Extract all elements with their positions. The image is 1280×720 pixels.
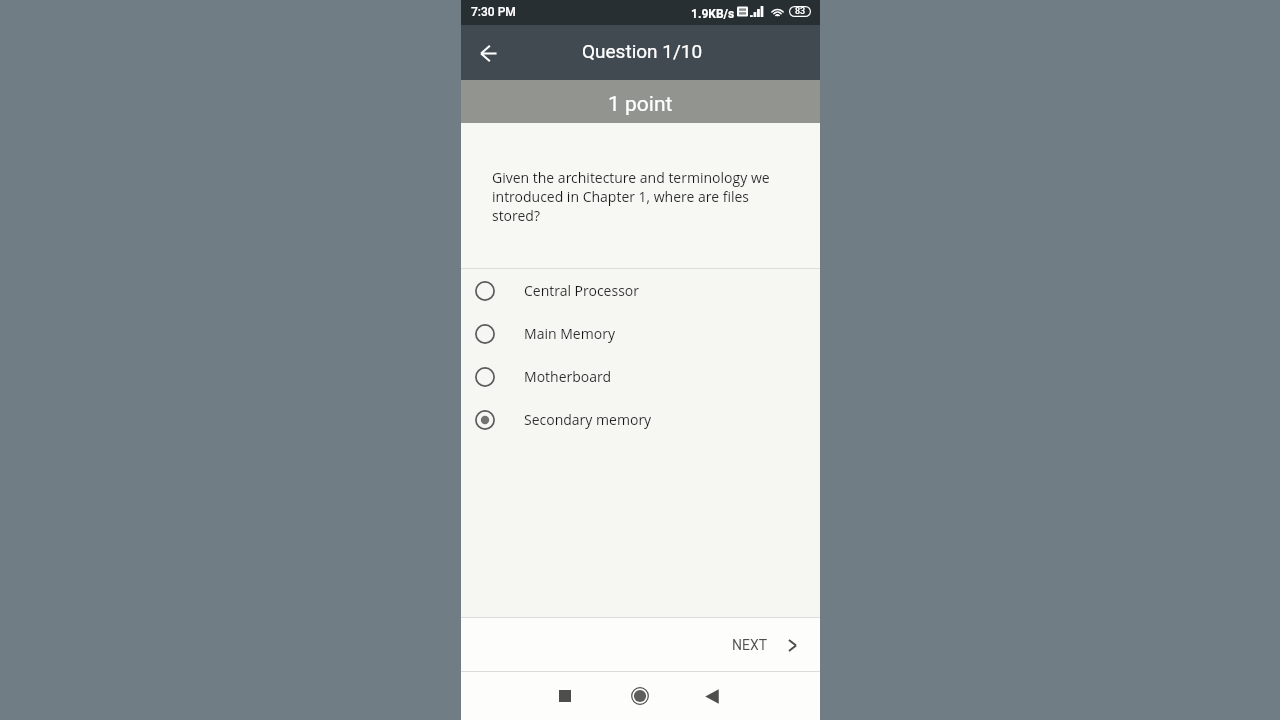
staticText: Secondary memory xyxy=(524,410,652,429)
staticText: Motherboard xyxy=(524,367,612,386)
staticText: 1.9KB/s xyxy=(691,7,735,21)
button[interactable]: Secondary memory xyxy=(461,398,820,441)
button[interactable]: Central Processor xyxy=(461,269,820,312)
staticText: Given the architecture and terminology w… xyxy=(492,168,777,225)
button[interactable]: Motherboard xyxy=(461,355,820,398)
staticText: 1 point xyxy=(608,92,673,117)
button[interactable]: NEXT xyxy=(732,637,797,653)
staticText: 83 xyxy=(795,6,806,17)
button[interactable]: Main Memory xyxy=(461,312,820,355)
staticText: Main Memory xyxy=(524,324,615,343)
staticText: Question 1/10 xyxy=(582,40,703,62)
button[interactable]: Back xyxy=(695,676,735,716)
button[interactable]: Recent apps xyxy=(545,676,585,716)
staticText: 7:30 PM xyxy=(471,5,516,19)
button[interactable]: Back xyxy=(472,37,504,69)
button[interactable]: Home xyxy=(620,676,660,716)
staticText: NEXT xyxy=(732,637,768,653)
staticText: Central Processor xyxy=(524,281,639,300)
